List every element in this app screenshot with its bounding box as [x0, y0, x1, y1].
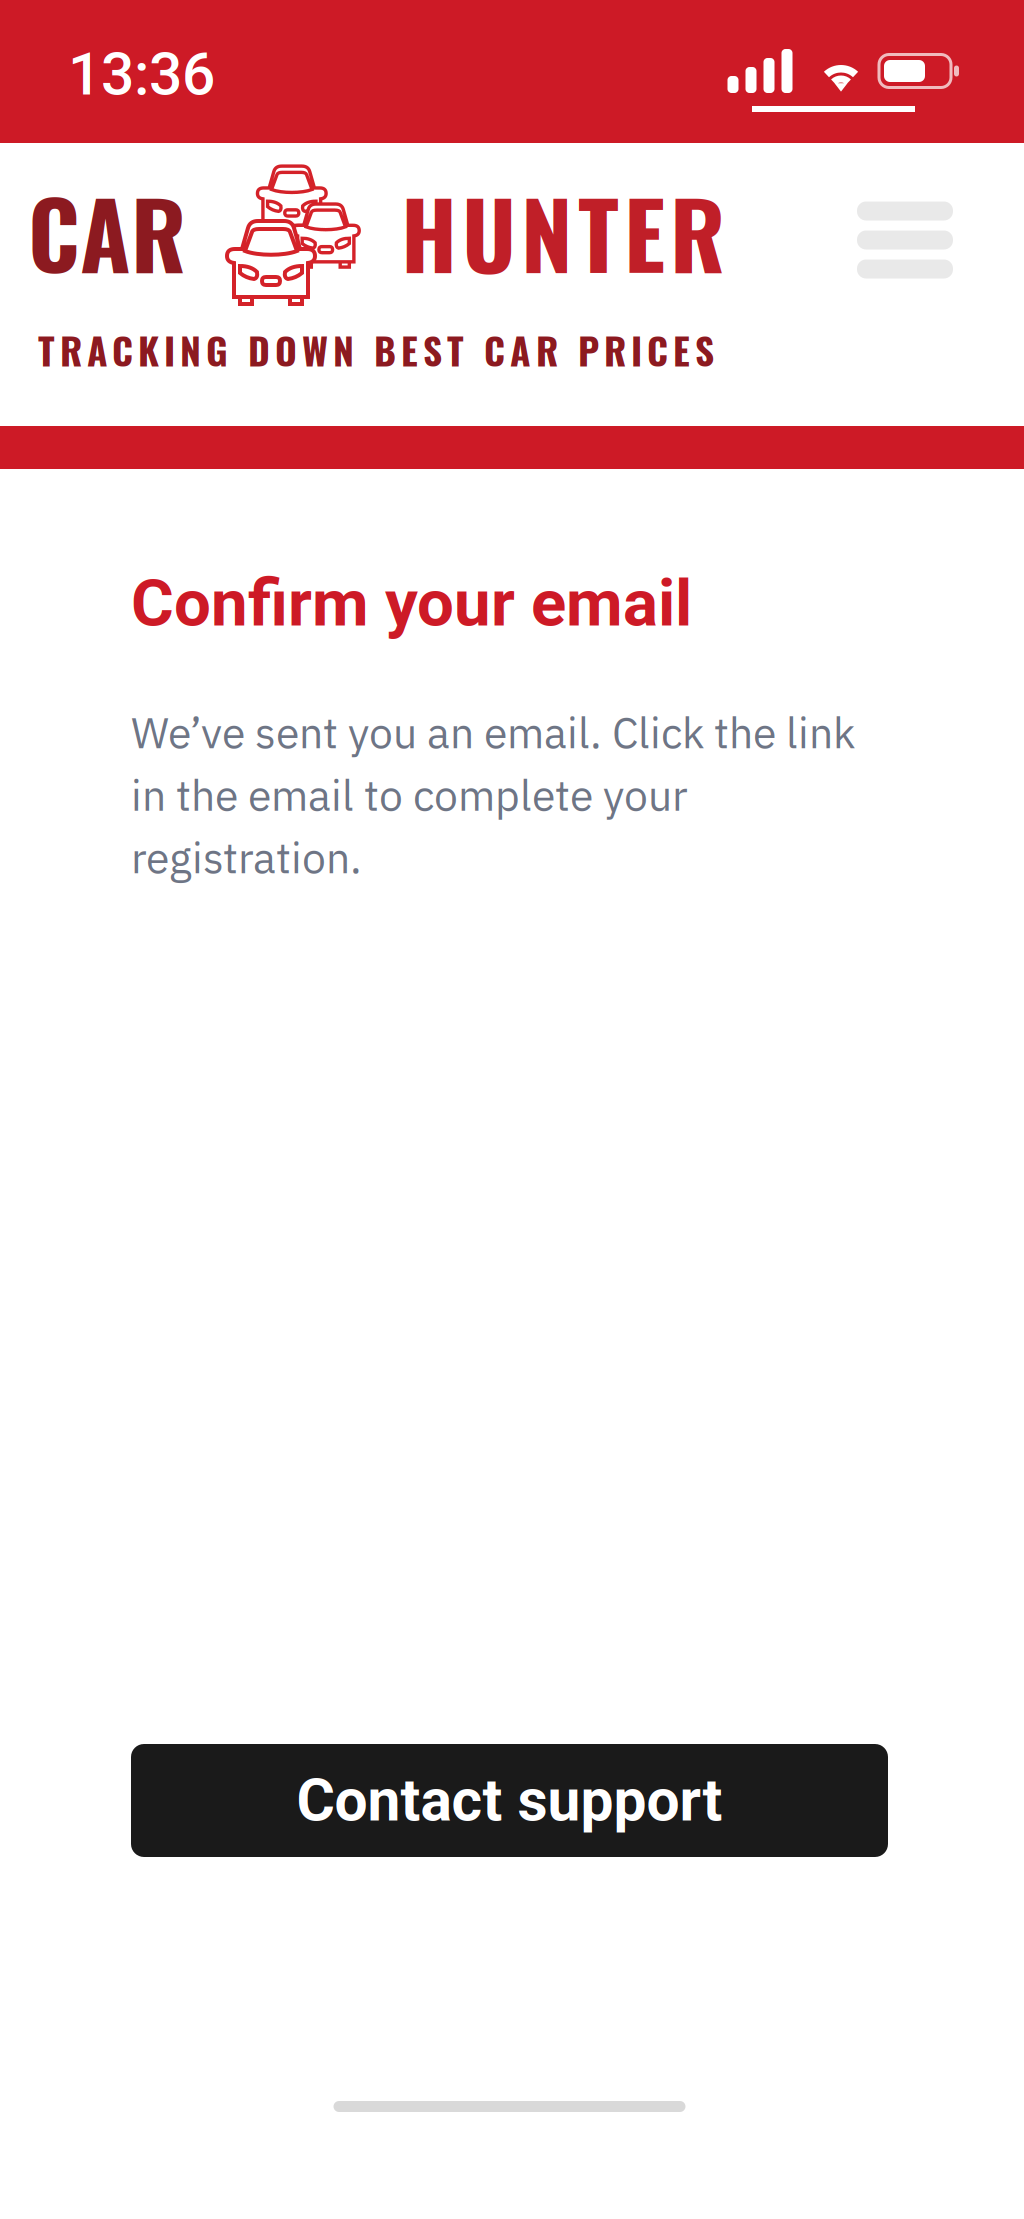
staticText: Confirm your email [131, 565, 692, 642]
button[interactable]: Menu [842, 192, 968, 288]
staticText: CAR [28, 163, 186, 299]
staticText: We’ve sent you an email. Click the link … [131, 705, 855, 885]
staticText: HUNTER [401, 163, 725, 299]
staticText: TRACKING DOWN BEST CAR PRICES [38, 322, 714, 377]
button[interactable]: Contact support [131, 1744, 888, 1857]
staticText: 13:36 [68, 40, 215, 109]
staticText: Contact support [296, 1766, 722, 1835]
